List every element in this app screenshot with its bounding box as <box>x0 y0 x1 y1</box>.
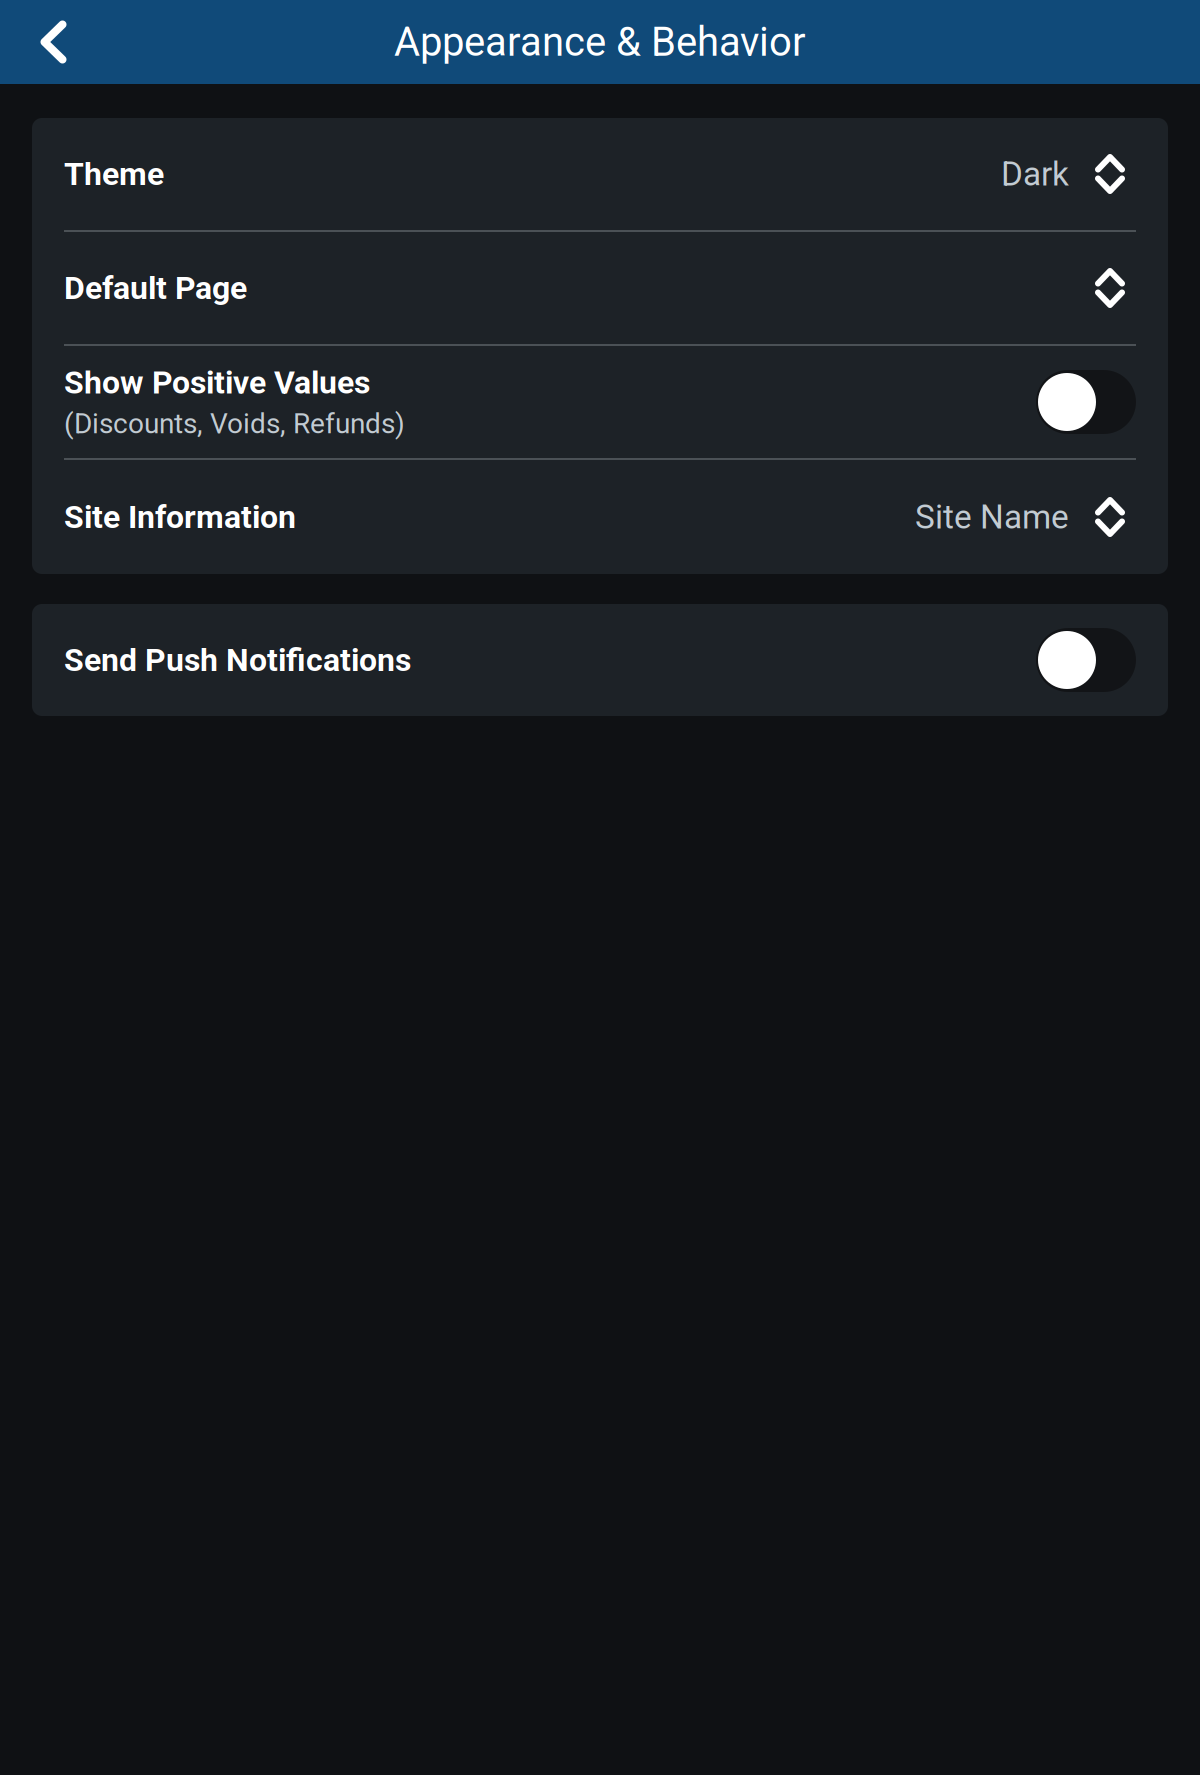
button[interactable]: Site Information <box>32 460 1168 574</box>
staticText: Dark <box>1001 154 1069 194</box>
staticText: Site Name <box>915 497 1069 537</box>
staticText: (Discounts, Voids, Refunds) <box>64 407 405 440</box>
staticText: Send Push Notifications <box>64 641 411 679</box>
button[interactable]: Default Page <box>32 232 1168 344</box>
staticText: Site Information <box>64 498 296 536</box>
button[interactable]: Back <box>0 0 91 84</box>
staticText: Show Positive Values <box>64 364 370 401</box>
staticText: Theme <box>64 155 164 193</box>
button[interactable]: Theme <box>32 118 1168 230</box>
staticText: Appearance & Behavior <box>394 19 806 65</box>
button[interactable]: Show Positive Values <box>1036 370 1136 434</box>
button[interactable]: Send Push Notifications <box>1036 628 1136 692</box>
staticText: Default Page <box>64 269 247 307</box>
button[interactable]: Show Positive Values <box>32 346 1168 458</box>
button[interactable]: Send Push Notifications <box>32 604 1168 716</box>
